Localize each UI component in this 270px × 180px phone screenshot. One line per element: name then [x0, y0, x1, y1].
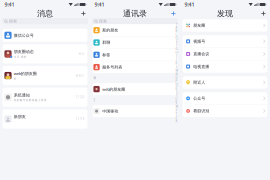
staticText: 好 — [14, 77, 17, 80]
staticText: A — [175, 26, 177, 29]
staticText: web的朋友圈 — [14, 71, 37, 76]
staticText: 11/19 — [76, 117, 85, 121]
staticText: ↑ — [175, 22, 177, 25]
staticText: 搜索 — [9, 19, 17, 23]
staticText: 公众号 — [193, 96, 205, 101]
staticText: M — [175, 69, 177, 72]
staticText: 群聊 — [102, 40, 110, 45]
staticText: 9:41 — [184, 1, 194, 8]
staticText: 消息 — [37, 9, 53, 18]
button[interactable]: web的朋友圈 — [3, 66, 87, 85]
staticText: 通讯录 — [123, 9, 147, 18]
button[interactable]: 看剧识别 — [183, 105, 267, 117]
staticText: S — [176, 90, 177, 94]
staticText: web的朋友圈 — [102, 86, 125, 92]
staticText: 视频号 — [193, 39, 205, 44]
staticText: W — [175, 105, 177, 108]
button[interactable]: 搜索 — [92, 18, 178, 24]
staticText: 搜索 — [99, 19, 107, 23]
button[interactable]: 系统通知 — [3, 88, 87, 107]
button[interactable]: 新的朋友 — [93, 24, 177, 36]
staticText: D — [175, 36, 177, 40]
staticText: 星期三 — [76, 74, 85, 77]
staticText: # — [175, 119, 177, 123]
staticText: N — [175, 72, 177, 76]
staticText: · — [14, 120, 15, 124]
staticText: O — [175, 76, 177, 79]
staticText: 9:41 — [4, 1, 14, 8]
staticText: T — [176, 94, 177, 97]
staticText: U — [175, 98, 177, 101]
staticText: E — [176, 40, 177, 43]
button[interactable]: 标签 — [93, 49, 177, 61]
staticText: P — [175, 80, 177, 83]
staticText: C — [175, 33, 177, 36]
staticText: 发现 — [217, 9, 233, 18]
button[interactable]: 服务号列表 — [93, 61, 177, 73]
staticText: 11/20 — [76, 95, 85, 99]
staticText: 9:41 — [94, 1, 104, 8]
staticText: 新朋友 — [14, 114, 26, 119]
button[interactable]: 视频号 — [183, 35, 267, 47]
button[interactable]: 新朋友 — [3, 109, 87, 129]
staticText: H — [175, 51, 177, 54]
button[interactable]: 电视直播 — [183, 60, 267, 73]
staticText: 看剧识别 — [193, 108, 209, 113]
button[interactable]: Add — [259, 9, 267, 17]
staticText: 系统通知 — [14, 93, 30, 98]
staticText: Z — [93, 98, 95, 102]
staticText: 直播会议 — [193, 51, 209, 56]
staticText: X — [175, 108, 177, 112]
staticText: 昨天 — [79, 52, 85, 55]
staticText: Y — [175, 112, 177, 115]
staticText: 新的朋友 — [102, 28, 118, 33]
staticText: 标签 — [102, 52, 110, 57]
staticText: G — [175, 47, 177, 51]
button[interactable]: 朋友圈 — [183, 19, 267, 32]
staticText: 朋友圈动态 — [14, 49, 34, 54]
staticText: W — [93, 76, 95, 80]
button[interactable]: 附近人 — [183, 76, 267, 89]
staticText: K — [175, 62, 177, 65]
button[interactable]: 搜索 — [2, 18, 88, 24]
staticText: 电视直播 — [193, 64, 209, 69]
staticText: Z — [175, 116, 177, 119]
staticText: 服务号列表 — [102, 65, 122, 69]
staticText: Q — [175, 83, 177, 87]
button[interactable]: 朋友圈动态 — [3, 44, 87, 63]
button[interactable]: 群聊 — [93, 36, 177, 48]
button[interactable]: 直播会议 — [183, 48, 267, 60]
button[interactable]: 微信公众号 — [3, 29, 87, 42]
staticText: 你的账号在新设备上登录 — [14, 99, 47, 102]
button[interactable]: Add — [169, 9, 177, 17]
staticText: B — [175, 29, 177, 33]
staticText: V — [175, 101, 177, 105]
staticText: 朋友圈 — [193, 23, 205, 28]
staticText: 附近人 — [193, 80, 205, 85]
staticText: I — [176, 54, 177, 58]
button[interactable]: web的朋友圈 — [93, 83, 177, 95]
staticText: 微信公众号 — [14, 33, 34, 38]
staticText: F — [176, 44, 177, 47]
button[interactable]: 公众号 — [183, 92, 267, 104]
button[interactable]: 中国移动 — [93, 105, 177, 117]
staticText: R — [175, 87, 177, 90]
staticText: 今天 很好 — [14, 55, 27, 58]
staticText: 中国移动 — [102, 109, 118, 113]
staticText: L — [176, 65, 177, 69]
button[interactable]: Add — [79, 9, 87, 17]
